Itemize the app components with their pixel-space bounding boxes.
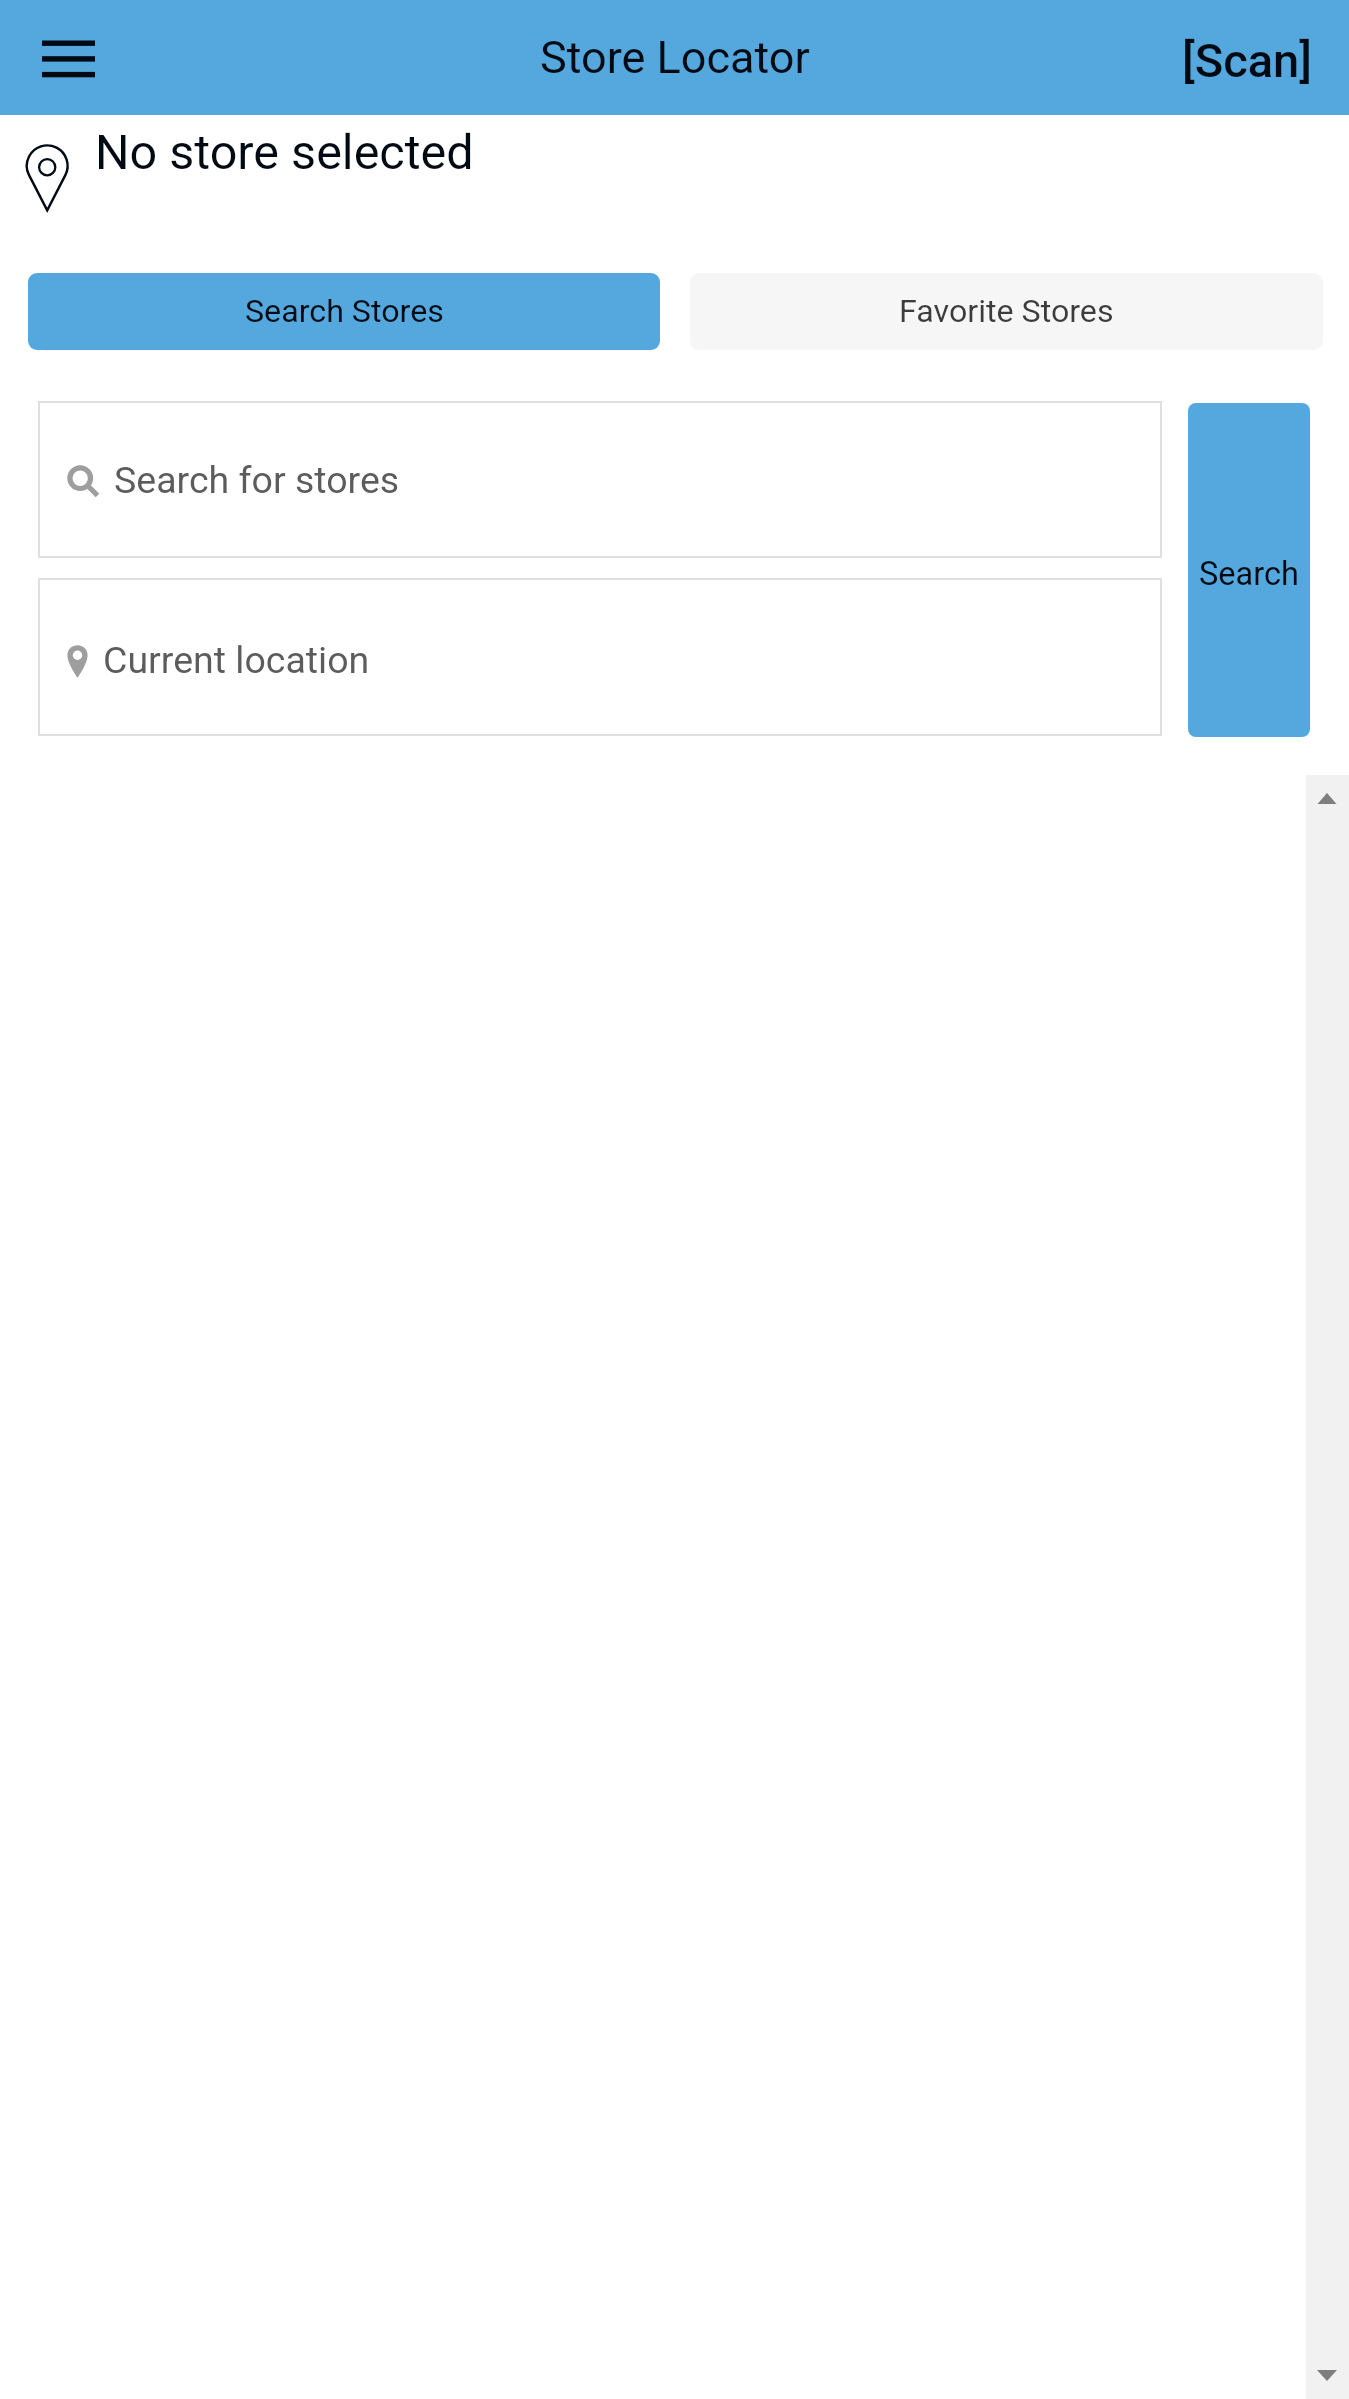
other: Selected store [26, 144, 70, 214]
staticText: Search for stores [114, 458, 400, 502]
button[interactable]: Search for stores [38, 401, 1162, 558]
staticText: No store selected [95, 124, 474, 181]
button[interactable]: Open navigation menu [22, 18, 114, 98]
staticText: Favorite Stores [899, 292, 1114, 330]
staticText: Current location [103, 638, 370, 682]
staticText: Search Stores [245, 292, 444, 330]
button[interactable]: Current location [38, 578, 1162, 736]
button[interactable]: Search Stores [28, 273, 660, 350]
staticText: [Scan] [1182, 33, 1313, 88]
button[interactable]: Search [1188, 403, 1310, 737]
button[interactable]: Favorite Stores [690, 273, 1323, 350]
staticText: Store Locator [540, 31, 810, 84]
button[interactable]: [Scan] [1144, 7, 1349, 108]
staticText: Search [1199, 555, 1299, 593]
